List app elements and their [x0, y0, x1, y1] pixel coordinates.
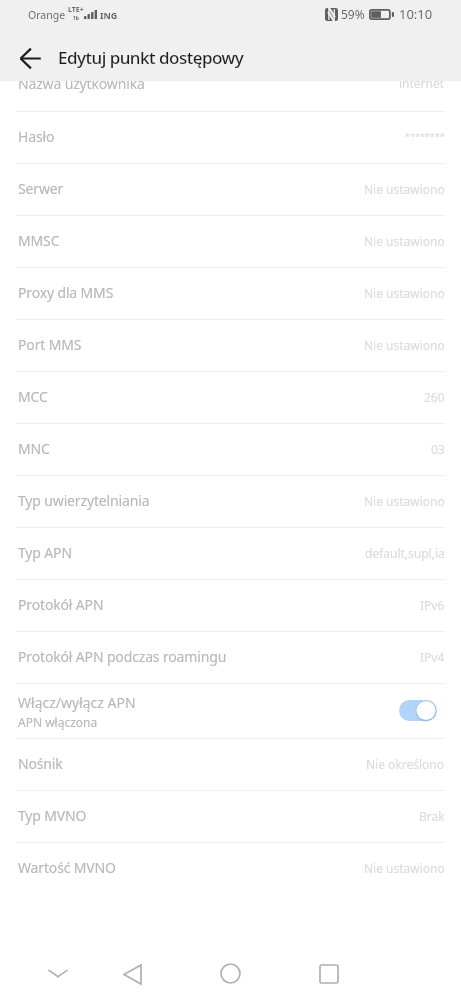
button[interactable]: Nośnik [0, 739, 461, 790]
staticText: Nie ustawiono [364, 337, 445, 353]
button[interactable]: MNC [0, 424, 461, 475]
staticText: Hasło [18, 127, 55, 146]
staticText: Typ MVNO [18, 806, 87, 825]
staticText: APN włączona [18, 714, 98, 730]
button[interactable]: Protokół APN [0, 580, 461, 631]
staticText: IPv6 [420, 597, 445, 613]
staticText: 1b [73, 15, 80, 22]
button[interactable]: Wartość MVNO [0, 843, 461, 894]
staticText: Nie ustawiono [364, 285, 445, 301]
staticText: Nie ustawiono [364, 493, 445, 509]
staticText: Nie ustawiono [364, 860, 445, 876]
staticText: internet [399, 75, 445, 91]
staticText: MNC [18, 439, 50, 458]
staticText: Serwer [18, 179, 64, 198]
button[interactable]: Back [9, 37, 51, 79]
button[interactable]: Recent apps [307, 952, 351, 996]
button[interactable]: Typ APN [0, 528, 461, 579]
staticText: 10:10 [399, 5, 433, 23]
button[interactable]: MMSC [0, 216, 461, 267]
button[interactable]: Port MMS [0, 320, 461, 371]
button[interactable]: Home [208, 951, 252, 995]
button[interactable]: Proxy dla MMS [0, 268, 461, 319]
staticText: 03 [431, 441, 445, 457]
staticText: Typ APN [18, 543, 72, 562]
staticText: Brak [419, 808, 445, 824]
staticText: ******** [405, 130, 445, 142]
staticText: Proxy dla MMS [18, 283, 114, 302]
staticText: Nie ustawiono [364, 181, 445, 197]
button[interactable]: Hasło [0, 112, 461, 163]
staticText: IPv4 [420, 649, 445, 665]
staticText: Wartość MVNO [18, 858, 116, 877]
button[interactable]: Serwer [0, 164, 461, 215]
button[interactable]: Typ uwierzytelniania [0, 476, 461, 527]
staticText: Nazwa użytkownika [18, 74, 145, 93]
staticText: Protokół APN podczas roamingu [18, 647, 227, 666]
staticText: Protokół APN [18, 595, 104, 614]
staticText: Edytuj punkt dostępowy [58, 46, 244, 69]
staticText: MCC [18, 387, 48, 406]
staticText: Typ uwierzytelniania [18, 491, 150, 510]
staticText: LTE+ [68, 5, 84, 15]
staticText: MMSC [18, 231, 60, 250]
button[interactable]: MCC [0, 372, 461, 423]
staticText: Nośnik [18, 754, 63, 773]
staticText: ING [100, 9, 118, 21]
staticText: 260 [424, 389, 445, 405]
staticText: default,supl,ia [365, 545, 445, 561]
staticText: Port MMS [18, 335, 82, 354]
staticText: Włącz/wyłącz APN [18, 693, 136, 712]
staticText: Nie określono [366, 756, 445, 772]
staticText: Orange [28, 8, 66, 22]
button[interactable]: Hide navigation bar [36, 951, 80, 995]
button[interactable]: Protokół APN podczas roamingu [0, 632, 461, 683]
staticText: 59% [341, 6, 365, 22]
button[interactable]: Back [110, 952, 154, 996]
staticText: Nie ustawiono [364, 233, 445, 249]
button[interactable]: Nazwa użytkownika [0, 57, 461, 111]
button[interactable]: Włącz/wyłącz APN [0, 684, 461, 738]
button[interactable]: Typ MVNO [0, 791, 461, 842]
